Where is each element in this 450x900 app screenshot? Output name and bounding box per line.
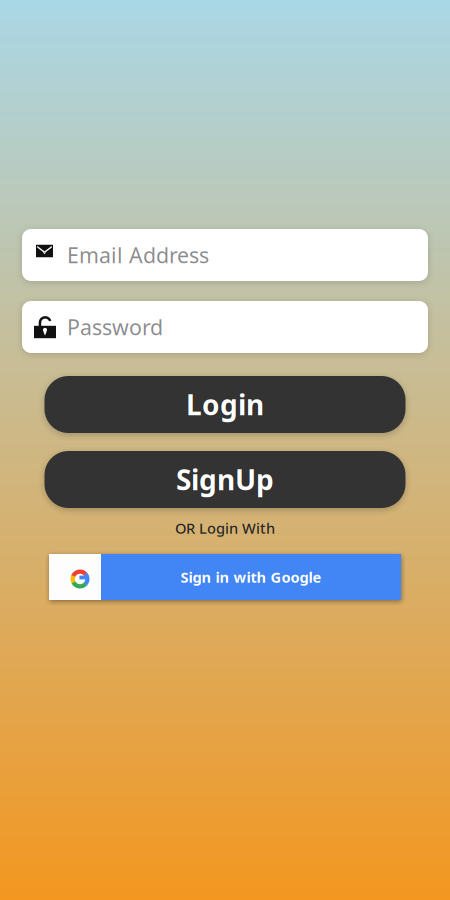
staticText: Sign in with Google	[180, 567, 321, 587]
staticText: Email Address	[67, 241, 209, 269]
staticText: SignUp	[176, 461, 274, 498]
button[interactable]: Password	[22, 301, 428, 353]
button[interactable]: Sign in with Google	[49, 554, 401, 600]
staticText: Login	[186, 386, 264, 423]
button[interactable]: Email Address	[22, 229, 428, 281]
staticText: OR Login With	[175, 518, 275, 538]
button[interactable]: SignUp	[44, 451, 405, 508]
button[interactable]: Login	[44, 376, 405, 433]
staticText: Password	[67, 313, 163, 341]
